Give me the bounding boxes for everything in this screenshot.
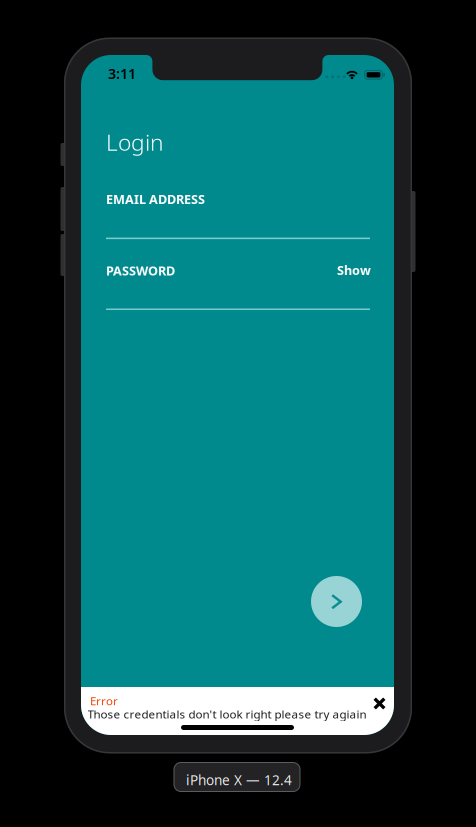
staticText: PASSWORD <box>106 262 175 279</box>
staticText: iPhone X — 12.4 <box>186 771 292 789</box>
button[interactable]: Show <box>337 261 371 279</box>
button[interactable]: Dismiss error <box>373 697 386 710</box>
staticText: Show <box>337 261 371 279</box>
staticText: Those credentials don't look right pleas… <box>87 706 366 722</box>
staticText: EMAIL ADDRESS <box>106 190 205 208</box>
staticText: Error <box>90 693 118 709</box>
button[interactable]: iPhone X — 12.4 <box>174 762 300 791</box>
staticText: 3:11 <box>108 64 136 83</box>
button[interactable]: Continue <box>311 576 362 627</box>
staticText: Login <box>106 126 164 157</box>
